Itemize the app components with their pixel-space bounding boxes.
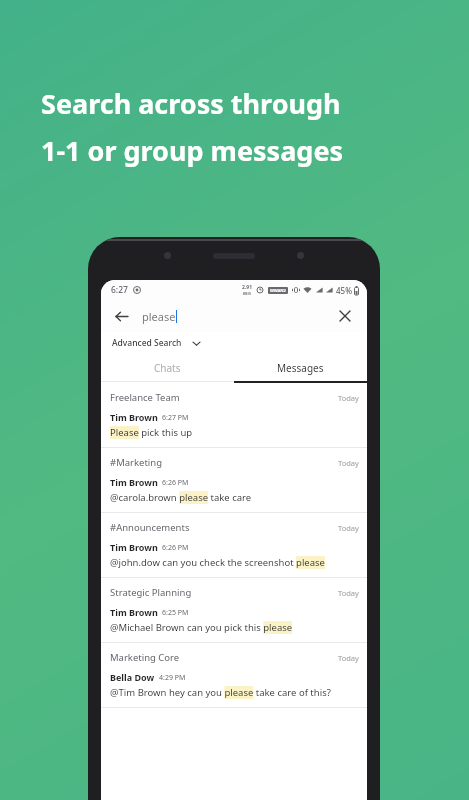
button[interactable]: Clear search xyxy=(333,304,357,328)
staticText: @Michael Brown can you pick this please xyxy=(110,621,293,634)
staticText: Today xyxy=(338,653,359,663)
staticText: 6:27 xyxy=(111,284,128,296)
staticText: Advanced Search xyxy=(112,337,182,349)
staticText: 1-1 or group messages xyxy=(41,132,344,169)
button[interactable]: #Marketing xyxy=(101,448,367,513)
staticText: Bella Dow xyxy=(110,671,155,683)
staticText: KB/S xyxy=(243,291,252,296)
staticText: Please pick this up xyxy=(110,426,193,439)
staticText: @john.dow can you check the screenshot p… xyxy=(110,556,325,569)
staticText: 6:27 PM xyxy=(162,413,189,423)
button[interactable]: Chats xyxy=(101,354,234,381)
staticText: #Announcements xyxy=(110,521,190,534)
staticText: Today xyxy=(338,458,359,468)
staticText: Tim Brown xyxy=(110,476,158,488)
staticText: 6:25 PM xyxy=(162,608,189,618)
staticText: 2.91 xyxy=(242,284,252,291)
staticText: please xyxy=(142,309,176,324)
staticText: 6:26 PM xyxy=(162,478,189,488)
button[interactable]: Marketing Core xyxy=(101,643,367,708)
button[interactable]: Advanced Search xyxy=(110,335,203,351)
staticText: Tim Brown xyxy=(110,606,158,618)
staticText: Tim Brown xyxy=(110,411,158,423)
staticText: Chats xyxy=(154,361,181,375)
button[interactable]: Strategic Planning xyxy=(101,578,367,643)
staticText: Strategic Planning xyxy=(110,586,192,599)
staticText: 4:29 PM xyxy=(159,673,186,683)
staticText: Search across through xyxy=(41,85,341,122)
staticText: @Tim Brown hey can you please take care … xyxy=(110,686,331,699)
staticText: Today xyxy=(338,588,359,598)
staticText: 6:26 PM xyxy=(162,543,189,553)
staticText: #Marketing xyxy=(110,456,163,469)
staticText: Today xyxy=(338,393,359,403)
staticText: Messages xyxy=(277,361,324,375)
button[interactable]: #Announcements xyxy=(101,513,367,578)
button[interactable]: Messages xyxy=(234,354,367,381)
staticText: WWAN2 xyxy=(270,288,286,293)
staticText: 45% xyxy=(336,285,352,296)
staticText: Today xyxy=(338,523,359,533)
staticText: @carola.brown please take care xyxy=(110,491,252,504)
staticText: Freelance Team xyxy=(110,391,180,404)
button[interactable]: Back xyxy=(109,304,133,328)
button[interactable]: Freelance Team xyxy=(101,383,367,448)
staticText: Tim Brown xyxy=(110,541,158,553)
staticText: Marketing Core xyxy=(110,651,180,664)
